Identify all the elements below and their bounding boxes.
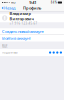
staticText: Владимир Викторович <box>9 11 33 21</box>
staticText: ЕЩЁ <box>2 44 7 48</box>
staticText: 9:41 <box>29 0 36 5</box>
staticText: +7 916 123-45-67 <box>9 22 37 25</box>
staticText: Создать новый аккаунт <box>2 29 44 34</box>
staticText: MTS <box>11 1 15 4</box>
button[interactable]: Поделиться <box>0 49 64 56</box>
staticText: Войти в аккаунт <box>2 36 31 41</box>
staticText: Поделиться <box>2 51 18 54</box>
staticText: Профиль <box>23 5 41 11</box>
button[interactable]: Войти в аккаунт <box>0 35 64 41</box>
button[interactable]: Владимир Викторович <box>0 14 64 22</box>
button[interactable]: Назад <box>0 5 17 11</box>
staticText: Назад <box>4 5 15 11</box>
staticText: 84% <box>51 1 57 4</box>
button[interactable]: Создать новый аккаунт <box>0 28 64 35</box>
